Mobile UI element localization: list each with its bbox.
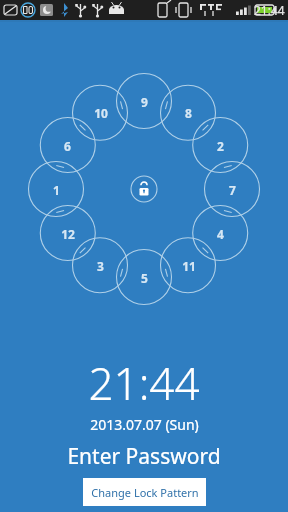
- button[interactable]: Enter Password: [55, 441, 233, 472]
- staticText: 4: [217, 226, 224, 242]
- button[interactable]: 9: [117, 74, 172, 129]
- button[interactable]: 10: [73, 85, 128, 140]
- button[interactable]: 3: [73, 238, 128, 293]
- staticText: 21:44: [254, 2, 285, 18]
- staticText: 1: [53, 182, 60, 198]
- button[interactable]: 2: [193, 118, 248, 173]
- button[interactable]: 5: [117, 250, 172, 305]
- button[interactable]: 6: [40, 118, 95, 173]
- button[interactable]: 7: [205, 162, 260, 217]
- staticText: 3: [97, 258, 104, 274]
- staticText: Enter Password: [67, 442, 221, 471]
- staticText: 10: [94, 105, 108, 121]
- button[interactable]: 4: [193, 206, 248, 261]
- button[interactable]: 1: [29, 162, 84, 217]
- staticText: 8: [185, 105, 192, 121]
- staticText: 5: [141, 270, 148, 286]
- staticText: 6: [64, 138, 71, 154]
- staticText: 2013.07.07 (Sun): [90, 415, 199, 434]
- staticText: 9: [141, 94, 148, 110]
- staticText: 12: [61, 226, 75, 242]
- staticText: 11: [182, 258, 196, 274]
- button[interactable]: Locked: [129, 174, 159, 204]
- staticText: 2: [217, 138, 224, 154]
- button[interactable]: 11: [161, 238, 216, 293]
- button[interactable]: Change Lock Pattern: [83, 478, 206, 506]
- staticText: Change Lock Pattern: [91, 485, 199, 500]
- button[interactable]: 8: [161, 85, 216, 140]
- staticText: 21:44: [88, 353, 200, 413]
- staticText: 7: [229, 182, 236, 198]
- button[interactable]: 12: [40, 206, 95, 261]
